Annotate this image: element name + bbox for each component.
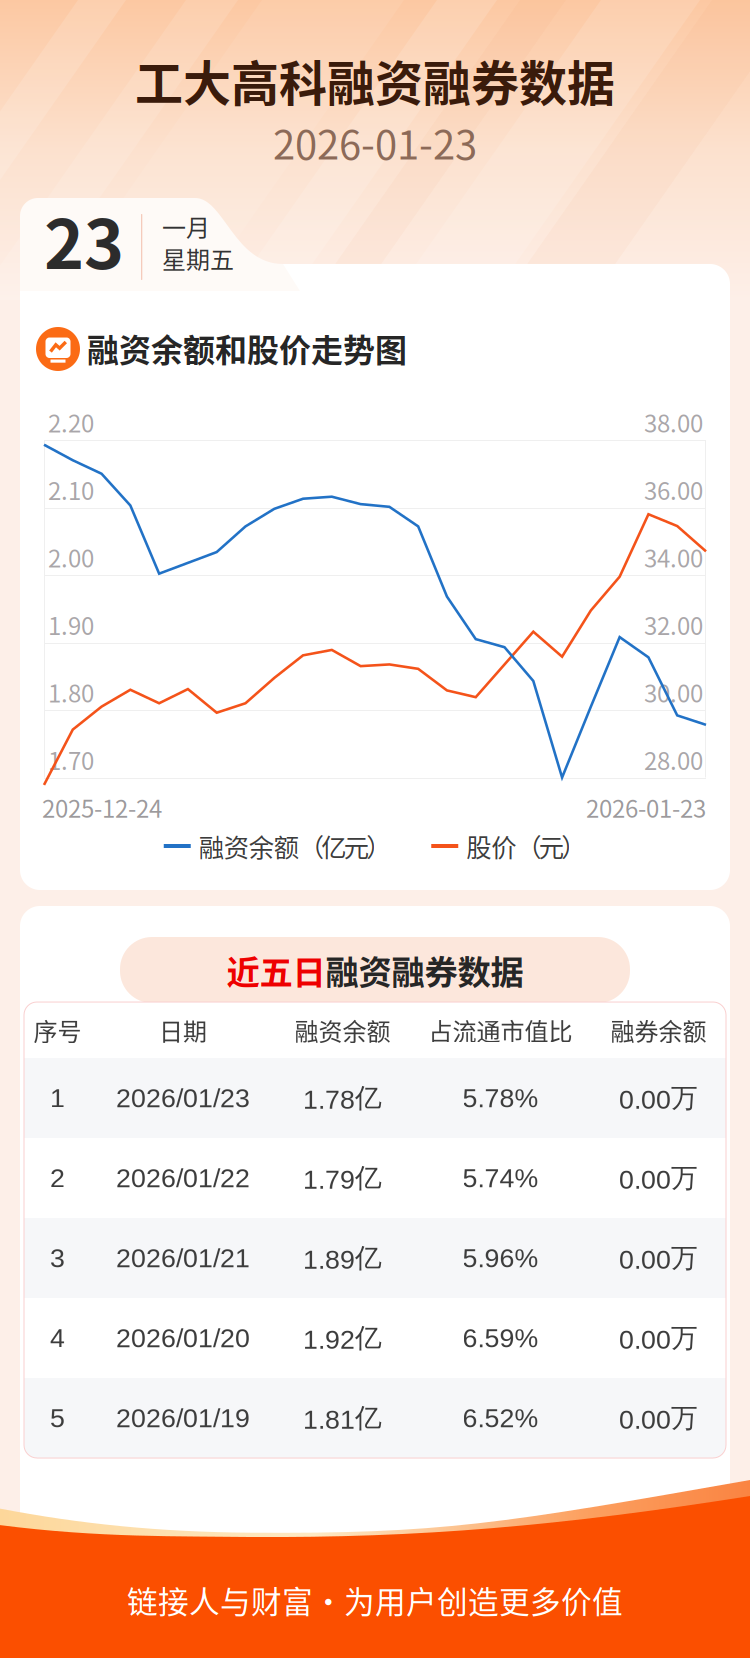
staticText: 1.78亿 [303,1081,382,1115]
staticText: （亿元） [299,828,391,864]
staticText: 4 [50,1323,65,1353]
staticText: （元） [516,828,586,864]
staticText: 2026-01-23 [586,790,706,825]
staticText: 0.00万 [619,1401,698,1435]
staticText: 2026-01-23 [273,113,477,171]
staticText: 2.00 [48,540,94,574]
staticText: 2.20 [48,405,94,439]
staticText: 序号 [33,1013,81,1047]
staticText: 0.00万 [619,1241,698,1275]
staticText: 链接人与财富·为用户创造更多价值 [127,1578,623,1622]
staticText: 股价 [466,828,516,864]
staticText: 6.52% [462,1403,538,1433]
staticText: 融券余额 [610,1013,706,1047]
staticText: 5 [50,1403,65,1433]
staticText: 0.00万 [619,1161,698,1195]
staticText: 0.00万 [619,1321,698,1355]
staticText: 2025-12-24 [42,790,162,825]
staticText: 38.00 [644,405,703,439]
staticText: 工大高科融资融券数据 [135,45,615,115]
staticText: 1.81亿 [303,1401,382,1435]
staticText: 2 [50,1163,65,1193]
staticText: 日期 [159,1013,207,1047]
staticText: 32.00 [644,607,703,642]
staticText: 2026/01/19 [116,1403,250,1433]
staticText: 2026/01/20 [116,1323,250,1353]
staticText: 近五日 [226,946,325,994]
staticText: 36.00 [644,472,703,507]
staticText: 34.00 [644,540,703,574]
staticText: 2026/01/21 [116,1243,250,1273]
staticText: 1.90 [48,607,94,642]
staticText: 融资余额 [199,828,299,864]
staticText: 一月 [162,209,210,244]
staticText: 2026/01/22 [116,1163,250,1193]
staticText: 1.89亿 [303,1241,382,1275]
staticText: 5.78% [462,1083,538,1113]
staticText: 0.00万 [619,1081,698,1115]
staticText: 星期五 [162,241,234,276]
staticText: 融资余额和股价走势图 [87,325,407,371]
staticText: 1.80 [48,675,94,709]
staticText: 占流通市值比 [428,1013,572,1047]
staticText: 1.79亿 [303,1161,382,1195]
staticText: 3 [50,1243,65,1273]
staticText: 1 [50,1083,65,1113]
staticText: 5.96% [462,1243,538,1273]
staticText: 6.59% [462,1323,538,1353]
staticText: 23 [44,190,124,288]
staticText: 1.70 [48,742,94,777]
staticText: 融资余额 [294,1013,390,1047]
staticText: 5.74% [462,1163,538,1193]
staticText: 2026/01/23 [116,1083,250,1113]
staticText: 28.00 [644,742,703,777]
staticText: 1.92亿 [303,1321,382,1355]
staticText: 融资融券数据 [325,946,523,994]
staticText: 2.10 [48,472,94,507]
staticText: 30.00 [644,675,703,709]
